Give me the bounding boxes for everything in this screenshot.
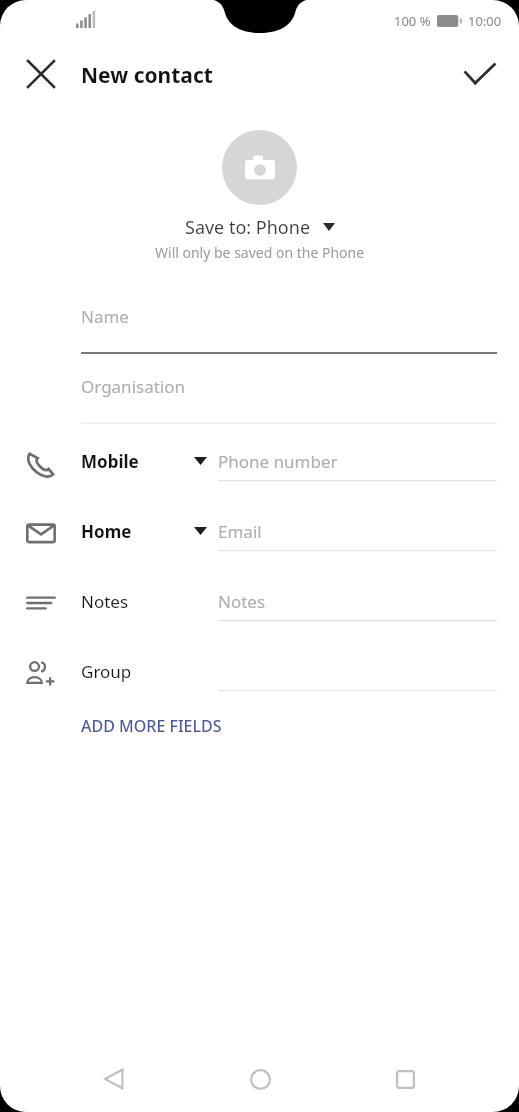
staticText: ADD MORE FIELDS: [81, 715, 222, 737]
staticText: 100 %: [394, 12, 431, 30]
button[interactable]: Recents: [373, 1047, 437, 1111]
staticText: 10:00: [468, 12, 502, 30]
staticText: New contact: [81, 61, 213, 90]
button[interactable]: Organisation: [81, 372, 497, 424]
button[interactable]: Back: [82, 1047, 146, 1111]
button[interactable]: Add photo: [222, 130, 297, 205]
button[interactable]: Save: [456, 50, 504, 98]
button[interactable]: Save to: Phone: [0, 212, 519, 242]
button[interactable]: Name: [81, 302, 497, 354]
button[interactable]: Notes: [0, 566, 519, 636]
button[interactable]: Home: [228, 1047, 292, 1111]
staticText: Mobile: [81, 450, 139, 473]
staticText: Notes: [81, 590, 129, 613]
button[interactable]: ADD MORE FIELDS: [70, 706, 233, 746]
staticText: Phone number: [218, 450, 338, 473]
staticText: Will only be saved on the Phone: [155, 243, 365, 262]
staticText: Save to: Phone: [185, 215, 311, 240]
staticText: Group: [81, 660, 132, 683]
staticText: Organisation: [81, 375, 186, 398]
button[interactable]: Home: [0, 496, 519, 566]
staticText: Email: [218, 520, 262, 543]
staticText: Notes: [218, 590, 266, 613]
staticText: Home: [81, 520, 132, 543]
button[interactable]: Group: [0, 636, 519, 706]
button[interactable]: Mobile: [0, 426, 519, 496]
button[interactable]: Close: [17, 50, 65, 98]
staticText: Name: [81, 305, 129, 328]
